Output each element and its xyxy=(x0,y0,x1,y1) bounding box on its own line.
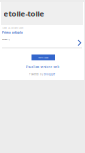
button[interactable]: Blogger xyxy=(44,72,55,76)
staticText: etoile-toile xyxy=(3,8,44,19)
button[interactable]: Visualizza versione web xyxy=(25,65,59,69)
button[interactable]: Primo articolo xyxy=(2,31,23,35)
staticText: Visualizza versione web xyxy=(25,65,59,69)
staticText: Powered by xyxy=(29,72,43,76)
staticText: Primo articolo xyxy=(2,31,23,35)
staticText: Home page xyxy=(38,56,48,59)
staticText: lundi 26 octobre 2009 xyxy=(2,26,23,29)
staticText: Blogger xyxy=(44,72,55,76)
button[interactable]: Home page xyxy=(31,54,55,60)
staticText: Prova :) xyxy=(2,37,10,41)
button[interactable]: Older posts xyxy=(76,38,82,47)
button[interactable]: etoile-toile xyxy=(1,2,83,25)
